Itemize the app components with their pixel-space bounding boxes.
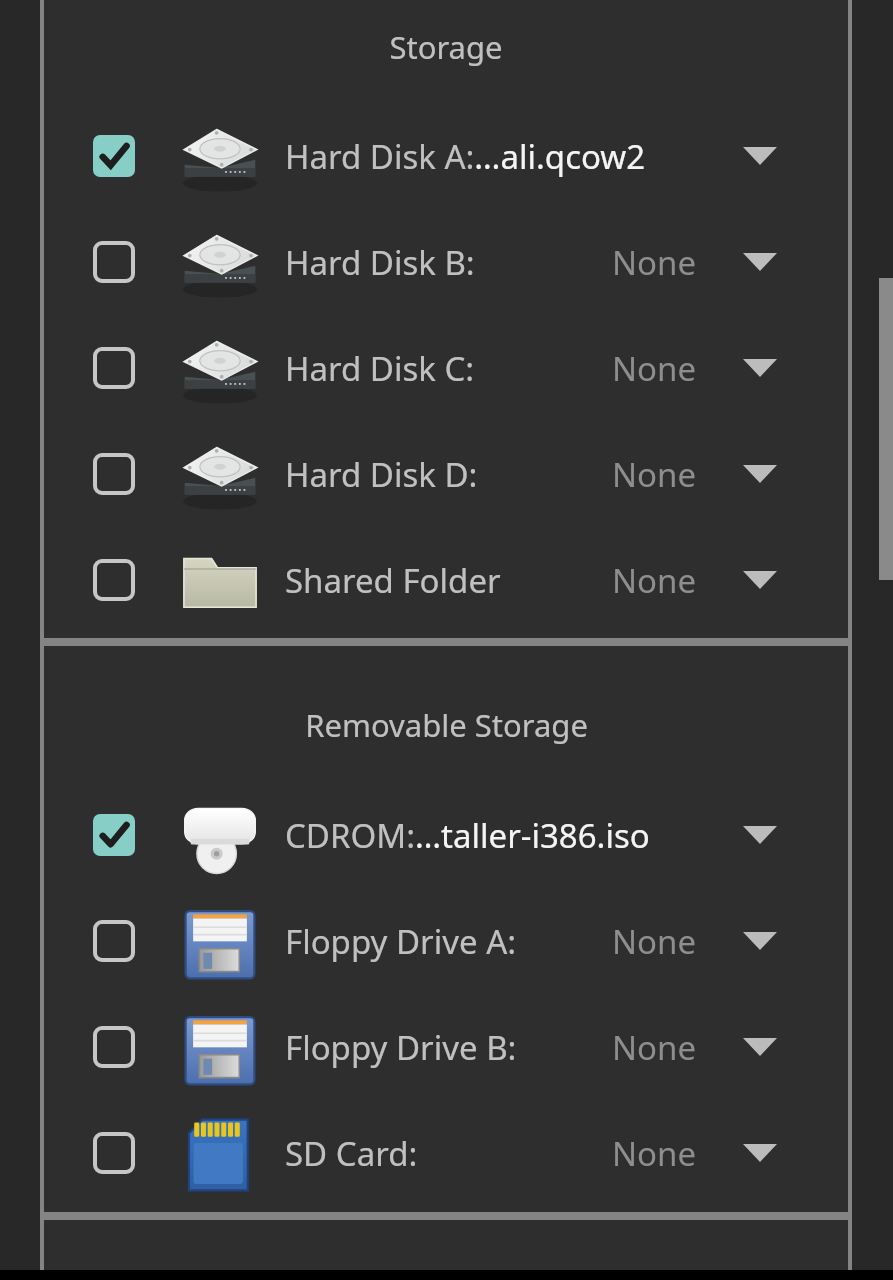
staticText: None bbox=[612, 919, 697, 964]
staticText: Hard Disk B: bbox=[285, 240, 475, 285]
button[interactable]: Enable Shared Folder bbox=[44, 536, 848, 624]
staticText: CDROM:…taller-i386.iso bbox=[285, 813, 650, 858]
button[interactable]: Choose image for Hard Disk D: bbox=[730, 444, 790, 504]
staticText: None bbox=[612, 1131, 697, 1176]
button[interactable]: Enable SD Card: bbox=[93, 1132, 135, 1174]
staticText: SD Card: bbox=[285, 1131, 418, 1176]
staticText: None bbox=[612, 558, 697, 603]
button[interactable]: Enable Floppy Drive B: bbox=[44, 1003, 848, 1091]
staticText: Floppy Drive B: bbox=[285, 1025, 517, 1070]
staticText: Shared Folder bbox=[285, 558, 501, 603]
button[interactable]: Choose image for Hard Disk B: bbox=[730, 232, 790, 292]
button[interactable]: Enable Hard Disk B: bbox=[93, 241, 135, 283]
button[interactable]: Choose image for CDROM: bbox=[730, 805, 790, 865]
staticText: None bbox=[612, 452, 697, 497]
button[interactable]: Enable Floppy Drive A: bbox=[44, 897, 848, 985]
button[interactable]: Enable CDROM: bbox=[44, 791, 848, 879]
button[interactable]: Choose image for Shared Folder bbox=[730, 550, 790, 610]
button[interactable]: Enable Hard Disk D: bbox=[44, 430, 848, 518]
button[interactable]: Enable SD Card: bbox=[44, 1109, 848, 1197]
button[interactable]: Enable Hard Disk C: bbox=[44, 324, 848, 412]
button[interactable]: Choose image for Floppy Drive A: bbox=[730, 911, 790, 971]
staticText: Hard Disk C: bbox=[285, 346, 475, 391]
staticText: Floppy Drive A: bbox=[285, 919, 517, 964]
button[interactable]: Enable Hard Disk D: bbox=[93, 453, 135, 495]
button[interactable]: Choose image for Hard Disk A: bbox=[730, 126, 790, 186]
button[interactable]: Enable Hard Disk A: bbox=[44, 112, 848, 200]
staticText: Storage bbox=[389, 26, 503, 68]
button[interactable]: Choose image for Floppy Drive B: bbox=[730, 1017, 790, 1077]
button[interactable]: Enable Hard Disk B: bbox=[44, 218, 848, 306]
button[interactable]: Enable Floppy Drive B: bbox=[93, 1026, 135, 1068]
button[interactable]: Enable Hard Disk C: bbox=[93, 347, 135, 389]
button[interactable]: Choose image for Hard Disk C: bbox=[730, 338, 790, 398]
button[interactable]: Enable CDROM: bbox=[93, 814, 135, 856]
staticText: None bbox=[612, 240, 697, 285]
staticText: Hard Disk A:…ali.qcow2 bbox=[285, 134, 646, 179]
button[interactable]: Choose image for SD Card: bbox=[730, 1123, 790, 1183]
button[interactable]: Enable Floppy Drive A: bbox=[93, 920, 135, 962]
staticText: Removable Storage bbox=[305, 704, 588, 746]
staticText: None bbox=[612, 1025, 697, 1070]
button[interactable]: Enable Hard Disk A: bbox=[93, 135, 135, 177]
button[interactable]: Enable Shared Folder bbox=[93, 559, 135, 601]
staticText: Hard Disk D: bbox=[285, 452, 478, 497]
staticText: None bbox=[612, 346, 697, 391]
